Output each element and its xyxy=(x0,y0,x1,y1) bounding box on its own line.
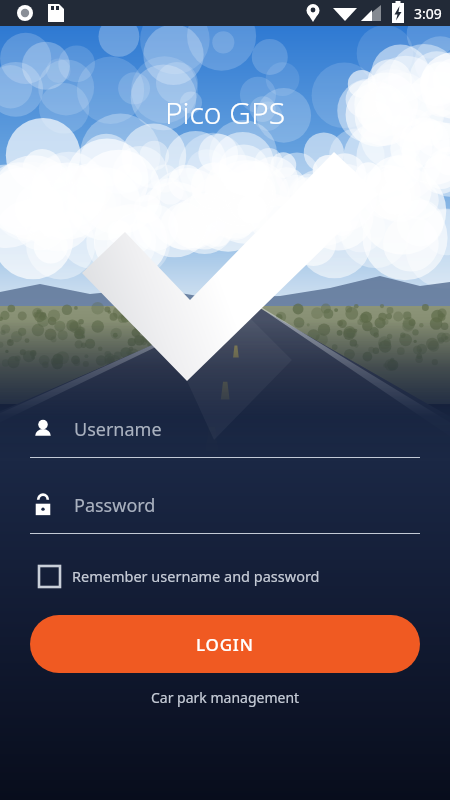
staticText: Car park management xyxy=(151,688,300,707)
other: Username xyxy=(30,416,56,442)
staticText: LOGIN xyxy=(196,633,254,656)
button[interactable]: Password xyxy=(30,485,420,534)
staticText: Pico GPS xyxy=(0,92,450,133)
button[interactable]: Username xyxy=(30,409,420,458)
staticText: Remember username and password xyxy=(72,566,320,586)
button[interactable]: Car park management xyxy=(30,688,420,707)
staticText: Password xyxy=(74,493,156,518)
button[interactable]: Remember username and password xyxy=(30,559,420,593)
staticText: Username xyxy=(74,417,162,442)
button[interactable]: LOGIN xyxy=(30,615,420,673)
staticText: 3:09 xyxy=(414,4,442,23)
other: Password xyxy=(30,492,56,518)
